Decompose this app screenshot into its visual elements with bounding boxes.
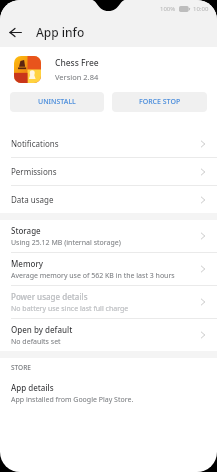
button[interactable]: Power usage details	[0, 286, 217, 318]
staticText: App info	[36, 24, 85, 40]
staticText: Average memory use of 562 KB in the last…	[11, 271, 175, 281]
button[interactable]: App details	[0, 377, 217, 409]
button[interactable]: Open by default	[0, 319, 217, 351]
staticText: App details	[11, 382, 54, 393]
staticText: Memory	[11, 258, 44, 269]
staticText: UNINSTALL	[38, 97, 76, 107]
staticText: Permissions	[11, 166, 200, 177]
staticText: App installed from Google Play Store.	[11, 395, 134, 405]
staticText: Power usage details	[11, 291, 88, 302]
button[interactable]: Memory	[0, 253, 217, 285]
button[interactable]: Back	[0, 17, 30, 47]
staticText: Chess Free	[55, 57, 99, 69]
staticText: Storage	[11, 225, 41, 236]
staticText: 10:00	[193, 5, 209, 13]
button[interactable]: UNINSTALL	[10, 92, 104, 112]
button[interactable]: Storage	[0, 220, 217, 252]
staticText: 100%	[160, 5, 176, 13]
button[interactable]: Notifications	[0, 130, 217, 157]
button[interactable]: Permissions	[0, 158, 217, 185]
staticText: Using 25.12 MB (internal storage)	[11, 238, 121, 248]
staticText: No battery use since last full charge	[11, 304, 129, 314]
staticText: Version 2.84	[55, 72, 99, 82]
button[interactable]: FORCE STOP	[112, 92, 207, 112]
staticText: Open by default	[11, 324, 73, 335]
staticText: No defaults set	[11, 337, 61, 347]
button[interactable]: Data usage	[0, 186, 217, 213]
staticText: STORE	[11, 363, 31, 372]
staticText: Data usage	[11, 194, 200, 205]
staticText: FORCE STOP	[139, 97, 181, 107]
staticText: Notifications	[11, 138, 200, 149]
